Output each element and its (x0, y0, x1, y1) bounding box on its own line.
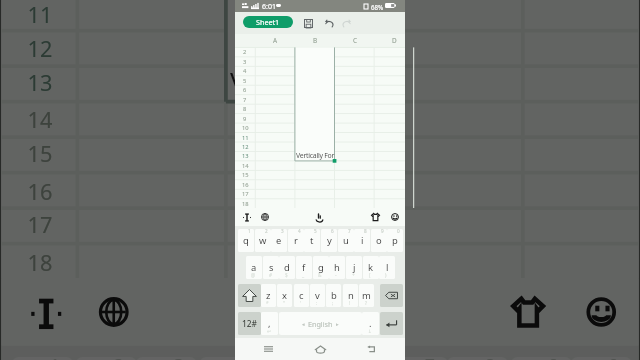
staticText: 0 (397, 228, 400, 234)
button[interactable]: A (255, 34, 295, 47)
button[interactable]: e (271, 229, 287, 252)
staticText: q (243, 234, 249, 247)
staticText: & (318, 272, 322, 278)
button[interactable]: Enter (380, 312, 403, 335)
staticText: x (282, 289, 287, 302)
button[interactable]: s (263, 256, 279, 279)
staticText: c (299, 289, 304, 302)
button[interactable]: Keyboard theme (369, 208, 382, 226)
button[interactable]: q (238, 229, 254, 252)
button[interactable]: b (326, 284, 341, 307)
staticText: ↩ (267, 329, 271, 334)
button[interactable]: Vertically For (295, 151, 336, 160)
button[interactable]: l (379, 256, 395, 279)
staticText: 16 (27, 177, 54, 207)
staticText: ▸ (336, 321, 339, 327)
staticText: 4 (298, 228, 301, 234)
button[interactable]: 12# (238, 312, 261, 335)
button[interactable]: r (288, 229, 304, 252)
staticText: ◂ (302, 321, 305, 327)
staticText: 19 (27, 282, 54, 312)
staticText: z (266, 289, 271, 302)
button[interactable]: z (261, 284, 276, 307)
button[interactable]: D (374, 34, 414, 47)
staticText: ; (332, 300, 334, 306)
staticText: . (369, 317, 372, 330)
button[interactable]: e (136, 357, 196, 360)
button[interactable]: Vertically For (226, 64, 380, 98)
button[interactable]: h (329, 256, 345, 279)
staticText: 5 (314, 228, 317, 234)
staticText: ↓ (368, 329, 372, 334)
button[interactable]: Sheet1 (243, 16, 293, 28)
button[interactable]: d (279, 256, 295, 279)
button[interactable]: f (296, 256, 312, 279)
button[interactable]: Undo (320, 12, 336, 34)
button[interactable]: t (304, 229, 320, 252)
button[interactable]: ◂ (279, 312, 362, 335)
staticText: f (302, 261, 306, 274)
button[interactable]: w (76, 357, 136, 360)
button[interactable]: Back (364, 338, 378, 360)
button[interactable]: Select (313, 208, 326, 226)
button[interactable]: o (371, 229, 387, 252)
button[interactable]: p (387, 229, 403, 252)
button[interactable]: p (571, 357, 631, 360)
button[interactable]: o (511, 357, 571, 360)
button[interactable]: m (359, 284, 374, 307)
staticText: 3 (281, 228, 284, 234)
button[interactable]: j (346, 256, 362, 279)
button[interactable]: a (246, 256, 262, 279)
button[interactable]: Home (313, 338, 327, 360)
button[interactable]: C (335, 34, 375, 47)
button[interactable]: i (447, 357, 507, 360)
button[interactable]: x (277, 284, 292, 307)
staticText: 2 (114, 353, 125, 360)
button[interactable]: Text cursor (20, 278, 69, 346)
staticText: 8 (243, 105, 247, 113)
button[interactable]: Emoji (388, 208, 401, 226)
staticText: m (362, 289, 371, 302)
button[interactable]: Keyboard theme (504, 278, 553, 346)
button[interactable]: Text cursor (240, 208, 253, 226)
button[interactable]: g (313, 256, 329, 279)
staticText: p (392, 234, 398, 247)
staticText: ) (385, 272, 387, 278)
button[interactable]: v (310, 284, 325, 307)
button[interactable]: u (338, 229, 354, 252)
staticText: 14 (242, 162, 249, 170)
button[interactable]: n (343, 284, 358, 307)
button[interactable]: . (362, 312, 379, 335)
staticText: @ (251, 272, 256, 278)
button[interactable]: Emoji (575, 278, 624, 346)
button[interactable]: Select (294, 278, 343, 346)
staticText: $ (285, 272, 288, 278)
button[interactable]: Redo (339, 12, 355, 34)
button[interactable]: B (295, 34, 335, 47)
staticText: 14 (27, 106, 54, 136)
button[interactable]: u (387, 357, 447, 360)
staticText: 9 (381, 228, 384, 234)
staticText: 12 (27, 34, 54, 64)
staticText: 13 (242, 152, 249, 160)
button[interactable]: r (200, 357, 260, 360)
staticText: ' (300, 300, 302, 306)
button[interactable]: i (354, 229, 370, 252)
button[interactable]: Switch language (258, 208, 271, 226)
staticText: 68% (371, 3, 384, 11)
button[interactable]: y (321, 229, 337, 252)
staticText: 15 (242, 171, 249, 179)
button[interactable]: Backspace (380, 284, 403, 307)
button[interactable]: Switch language (87, 278, 136, 346)
button[interactable]: Recent apps (261, 338, 275, 360)
button[interactable]: Save (300, 12, 316, 34)
button[interactable]: k (363, 256, 379, 279)
staticText: 9 (549, 353, 560, 360)
button[interactable]: w (255, 229, 271, 252)
button[interactable]: Shift (238, 284, 261, 307)
button[interactable]: , (261, 312, 278, 335)
button[interactable]: c (294, 284, 309, 307)
